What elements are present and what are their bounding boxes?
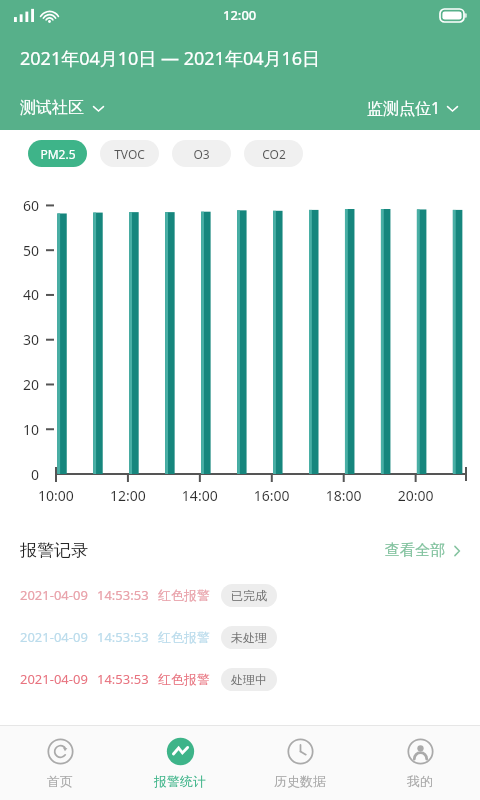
staticText: 监测点位1 <box>367 97 441 119</box>
staticText: 我的 <box>407 773 433 789</box>
staticText: 红色报警 <box>158 629 210 645</box>
staticText: 14:53:53 <box>97 628 149 646</box>
button[interactable]: 2021-04-09 <box>0 658 480 700</box>
staticText: TVOC <box>114 146 145 162</box>
button[interactable]: PM2.5 <box>28 140 87 167</box>
other: 历史数据 <box>286 737 315 766</box>
staticText: CO2 <box>262 146 286 162</box>
button[interactable]: 报警统计 <box>120 729 240 797</box>
button[interactable]: 我的 <box>360 729 480 797</box>
button[interactable]: CO2 <box>244 140 303 167</box>
other: 首页 <box>46 737 75 766</box>
staticText: 2021-04-09 <box>20 586 88 604</box>
staticText: 2021-04-09 <box>20 628 88 646</box>
staticText: 测试社区 <box>20 98 84 118</box>
other: 报警统计 <box>166 737 195 766</box>
button[interactable]: TVOC <box>100 140 159 167</box>
staticText: 2021-04-09 <box>20 670 88 688</box>
staticText: 未处理 <box>231 630 267 645</box>
button[interactable]: 2021-04-09 <box>0 574 480 616</box>
staticText: 报警统计 <box>154 773 206 789</box>
staticText: 14:53:53 <box>97 586 149 604</box>
staticText: 报警记录 <box>20 540 88 561</box>
button[interactable]: 2021-04-09 <box>0 616 480 658</box>
other: 我的 <box>406 737 435 766</box>
staticText: 红色报警 <box>158 587 210 603</box>
staticText: 2021年04月10日 — 2021年04月16日 <box>20 46 321 71</box>
staticText: 已完成 <box>231 588 267 603</box>
staticText: PM2.5 <box>40 146 76 162</box>
staticText: 14:53:53 <box>97 670 149 688</box>
staticText: 处理中 <box>231 672 267 687</box>
button[interactable]: 监测点位1 <box>367 97 460 119</box>
button[interactable]: 查看全部 <box>385 541 464 560</box>
staticText: 查看全部 <box>385 541 445 560</box>
staticText: 红色报警 <box>158 671 210 687</box>
staticText: 首页 <box>47 773 73 789</box>
staticText: 12:00 <box>223 6 257 24</box>
staticText: 历史数据 <box>274 773 326 789</box>
button[interactable]: 首页 <box>0 729 120 797</box>
staticText: O3 <box>193 146 210 162</box>
button[interactable]: 历史数据 <box>240 729 360 797</box>
button[interactable]: 测试社区 <box>20 98 106 118</box>
button[interactable]: O3 <box>172 140 231 167</box>
button[interactable]: 2021年04月10日 — 2021年04月16日 <box>0 30 480 86</box>
